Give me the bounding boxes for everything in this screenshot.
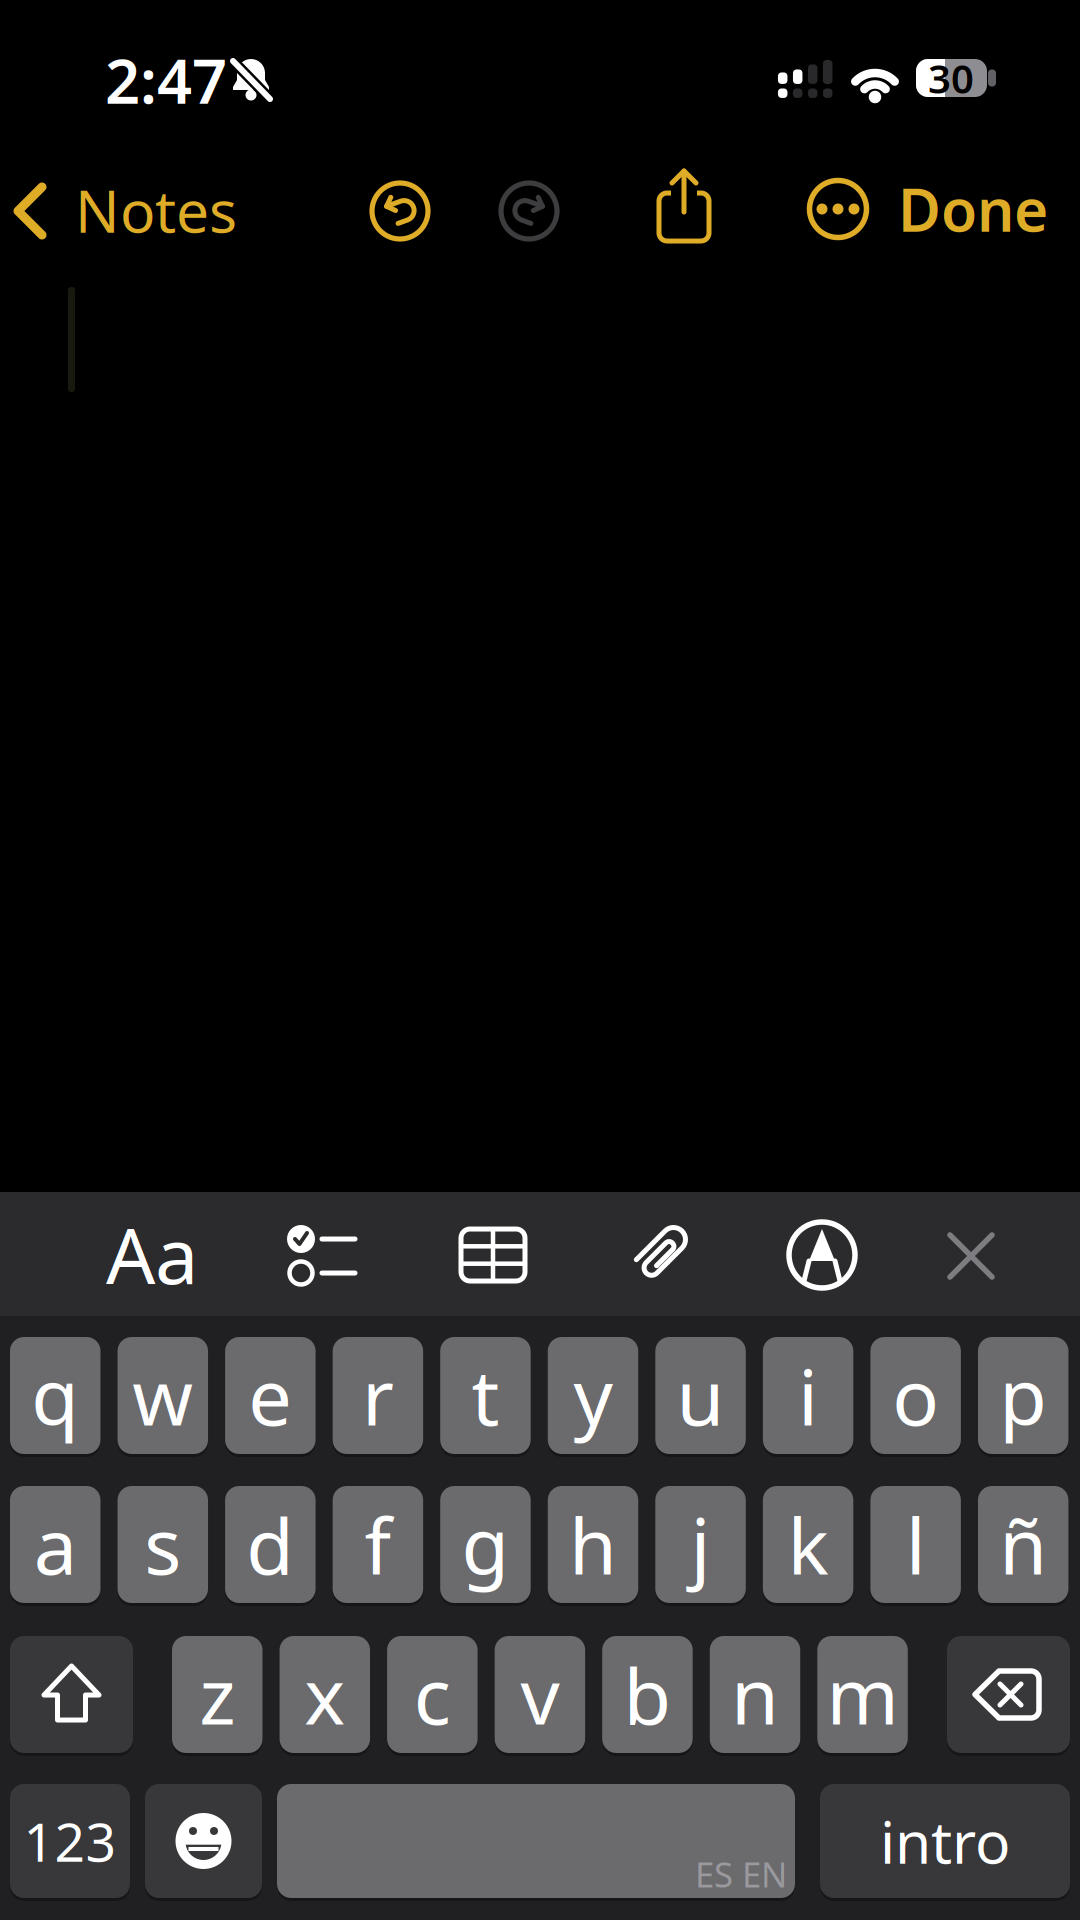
staticText: 123: [23, 1806, 116, 1876]
button[interactable]: [806, 177, 870, 241]
staticText: y: [573, 1344, 612, 1447]
button[interactable]: ES EN: [277, 1784, 795, 1898]
button[interactable]: m: [817, 1636, 908, 1753]
staticText: p: [999, 1344, 1047, 1447]
staticText: i: [798, 1344, 818, 1447]
button[interactable]: q: [10, 1337, 100, 1454]
staticText: z: [199, 1643, 235, 1746]
staticText: j: [690, 1493, 710, 1596]
staticText: b: [623, 1643, 671, 1746]
staticText: 30: [928, 51, 974, 104]
button[interactable]: r: [333, 1337, 423, 1454]
button[interactable]: [453, 1221, 533, 1289]
button[interactable]: [939, 1224, 1003, 1288]
staticText: v: [520, 1643, 559, 1746]
button[interactable]: ñ: [978, 1486, 1068, 1603]
button[interactable]: u: [655, 1337, 746, 1454]
staticText: o: [892, 1344, 939, 1447]
button[interactable]: w: [118, 1337, 208, 1454]
staticText: ES EN: [695, 1851, 787, 1897]
button[interactable]: x: [280, 1636, 370, 1753]
button[interactable]: [947, 1636, 1070, 1753]
button[interactable]: Done: [883, 177, 1063, 241]
staticText: q: [31, 1344, 79, 1447]
button[interactable]: d: [225, 1486, 316, 1603]
staticText: f: [364, 1493, 391, 1596]
button[interactable]: 123: [10, 1784, 130, 1898]
button[interactable]: Aa: [97, 1209, 207, 1299]
button[interactable]: b: [602, 1636, 693, 1753]
staticText: r: [362, 1344, 394, 1447]
button[interactable]: [652, 164, 716, 246]
staticText: Done: [898, 170, 1048, 248]
button[interactable]: [782, 1215, 862, 1295]
staticText: e: [248, 1344, 292, 1447]
staticText: a: [34, 1493, 77, 1596]
staticText: m: [826, 1643, 898, 1746]
button[interactable]: j: [655, 1486, 746, 1603]
staticText: Aa: [106, 1203, 198, 1305]
staticText: Notes: [75, 171, 237, 249]
button[interactable]: p: [978, 1337, 1068, 1454]
staticText: n: [731, 1643, 779, 1746]
staticText: x: [304, 1643, 345, 1746]
button[interactable]: intro: [820, 1784, 1070, 1898]
button[interactable]: s: [118, 1486, 208, 1603]
button[interactable]: v: [495, 1636, 585, 1753]
button[interactable]: Notes: [10, 179, 210, 243]
button[interactable]: [10, 1636, 133, 1753]
staticText: k: [788, 1493, 829, 1596]
button[interactable]: f: [333, 1486, 423, 1603]
button[interactable]: [621, 1216, 697, 1292]
button[interactable]: [145, 1784, 262, 1898]
button[interactable]: o: [870, 1337, 961, 1454]
button[interactable]: t: [440, 1337, 531, 1454]
button[interactable]: y: [548, 1337, 638, 1454]
staticText: g: [461, 1493, 509, 1596]
staticText: w: [132, 1344, 193, 1447]
staticText: l: [906, 1493, 926, 1596]
button[interactable]: l: [870, 1486, 961, 1603]
button[interactable]: z: [172, 1636, 262, 1753]
button[interactable]: [497, 179, 561, 243]
staticText: intro: [880, 1802, 1010, 1880]
button[interactable]: [281, 1216, 371, 1296]
button[interactable]: g: [440, 1486, 531, 1603]
staticText: 2:47: [105, 39, 227, 121]
button[interactable]: c: [387, 1636, 478, 1753]
button[interactable]: a: [10, 1486, 100, 1603]
staticText: d: [246, 1493, 294, 1596]
staticText: u: [676, 1344, 724, 1447]
button[interactable]: h: [548, 1486, 638, 1603]
button[interactable]: i: [763, 1337, 853, 1454]
staticText: c: [414, 1643, 451, 1746]
button[interactable]: k: [763, 1486, 853, 1603]
staticText: t: [471, 1344, 499, 1447]
button[interactable]: e: [225, 1337, 316, 1454]
button[interactable]: n: [710, 1636, 800, 1753]
button[interactable]: [368, 179, 432, 243]
staticText: s: [144, 1493, 181, 1596]
staticText: h: [569, 1493, 617, 1596]
staticText: ñ: [999, 1493, 1047, 1596]
